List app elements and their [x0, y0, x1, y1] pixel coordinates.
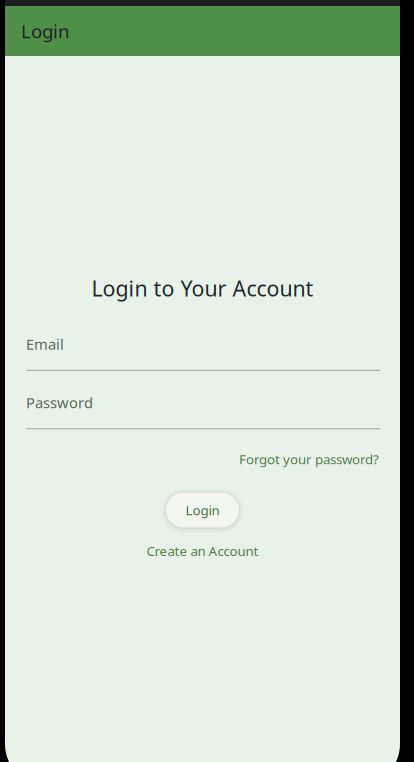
staticText: Login: [185, 501, 219, 519]
staticText: Email: [26, 334, 64, 354]
staticText: Forgot your password?: [239, 450, 379, 468]
staticText: Create an Account: [146, 542, 258, 560]
button[interactable]: Forgot your password?: [239, 450, 379, 468]
staticText: Login: [21, 19, 70, 43]
button[interactable]: Login: [165, 492, 239, 528]
staticText: Password: [26, 393, 93, 412]
staticText: Login to Your Account: [91, 274, 313, 302]
button[interactable]: Create an Account: [146, 542, 258, 560]
